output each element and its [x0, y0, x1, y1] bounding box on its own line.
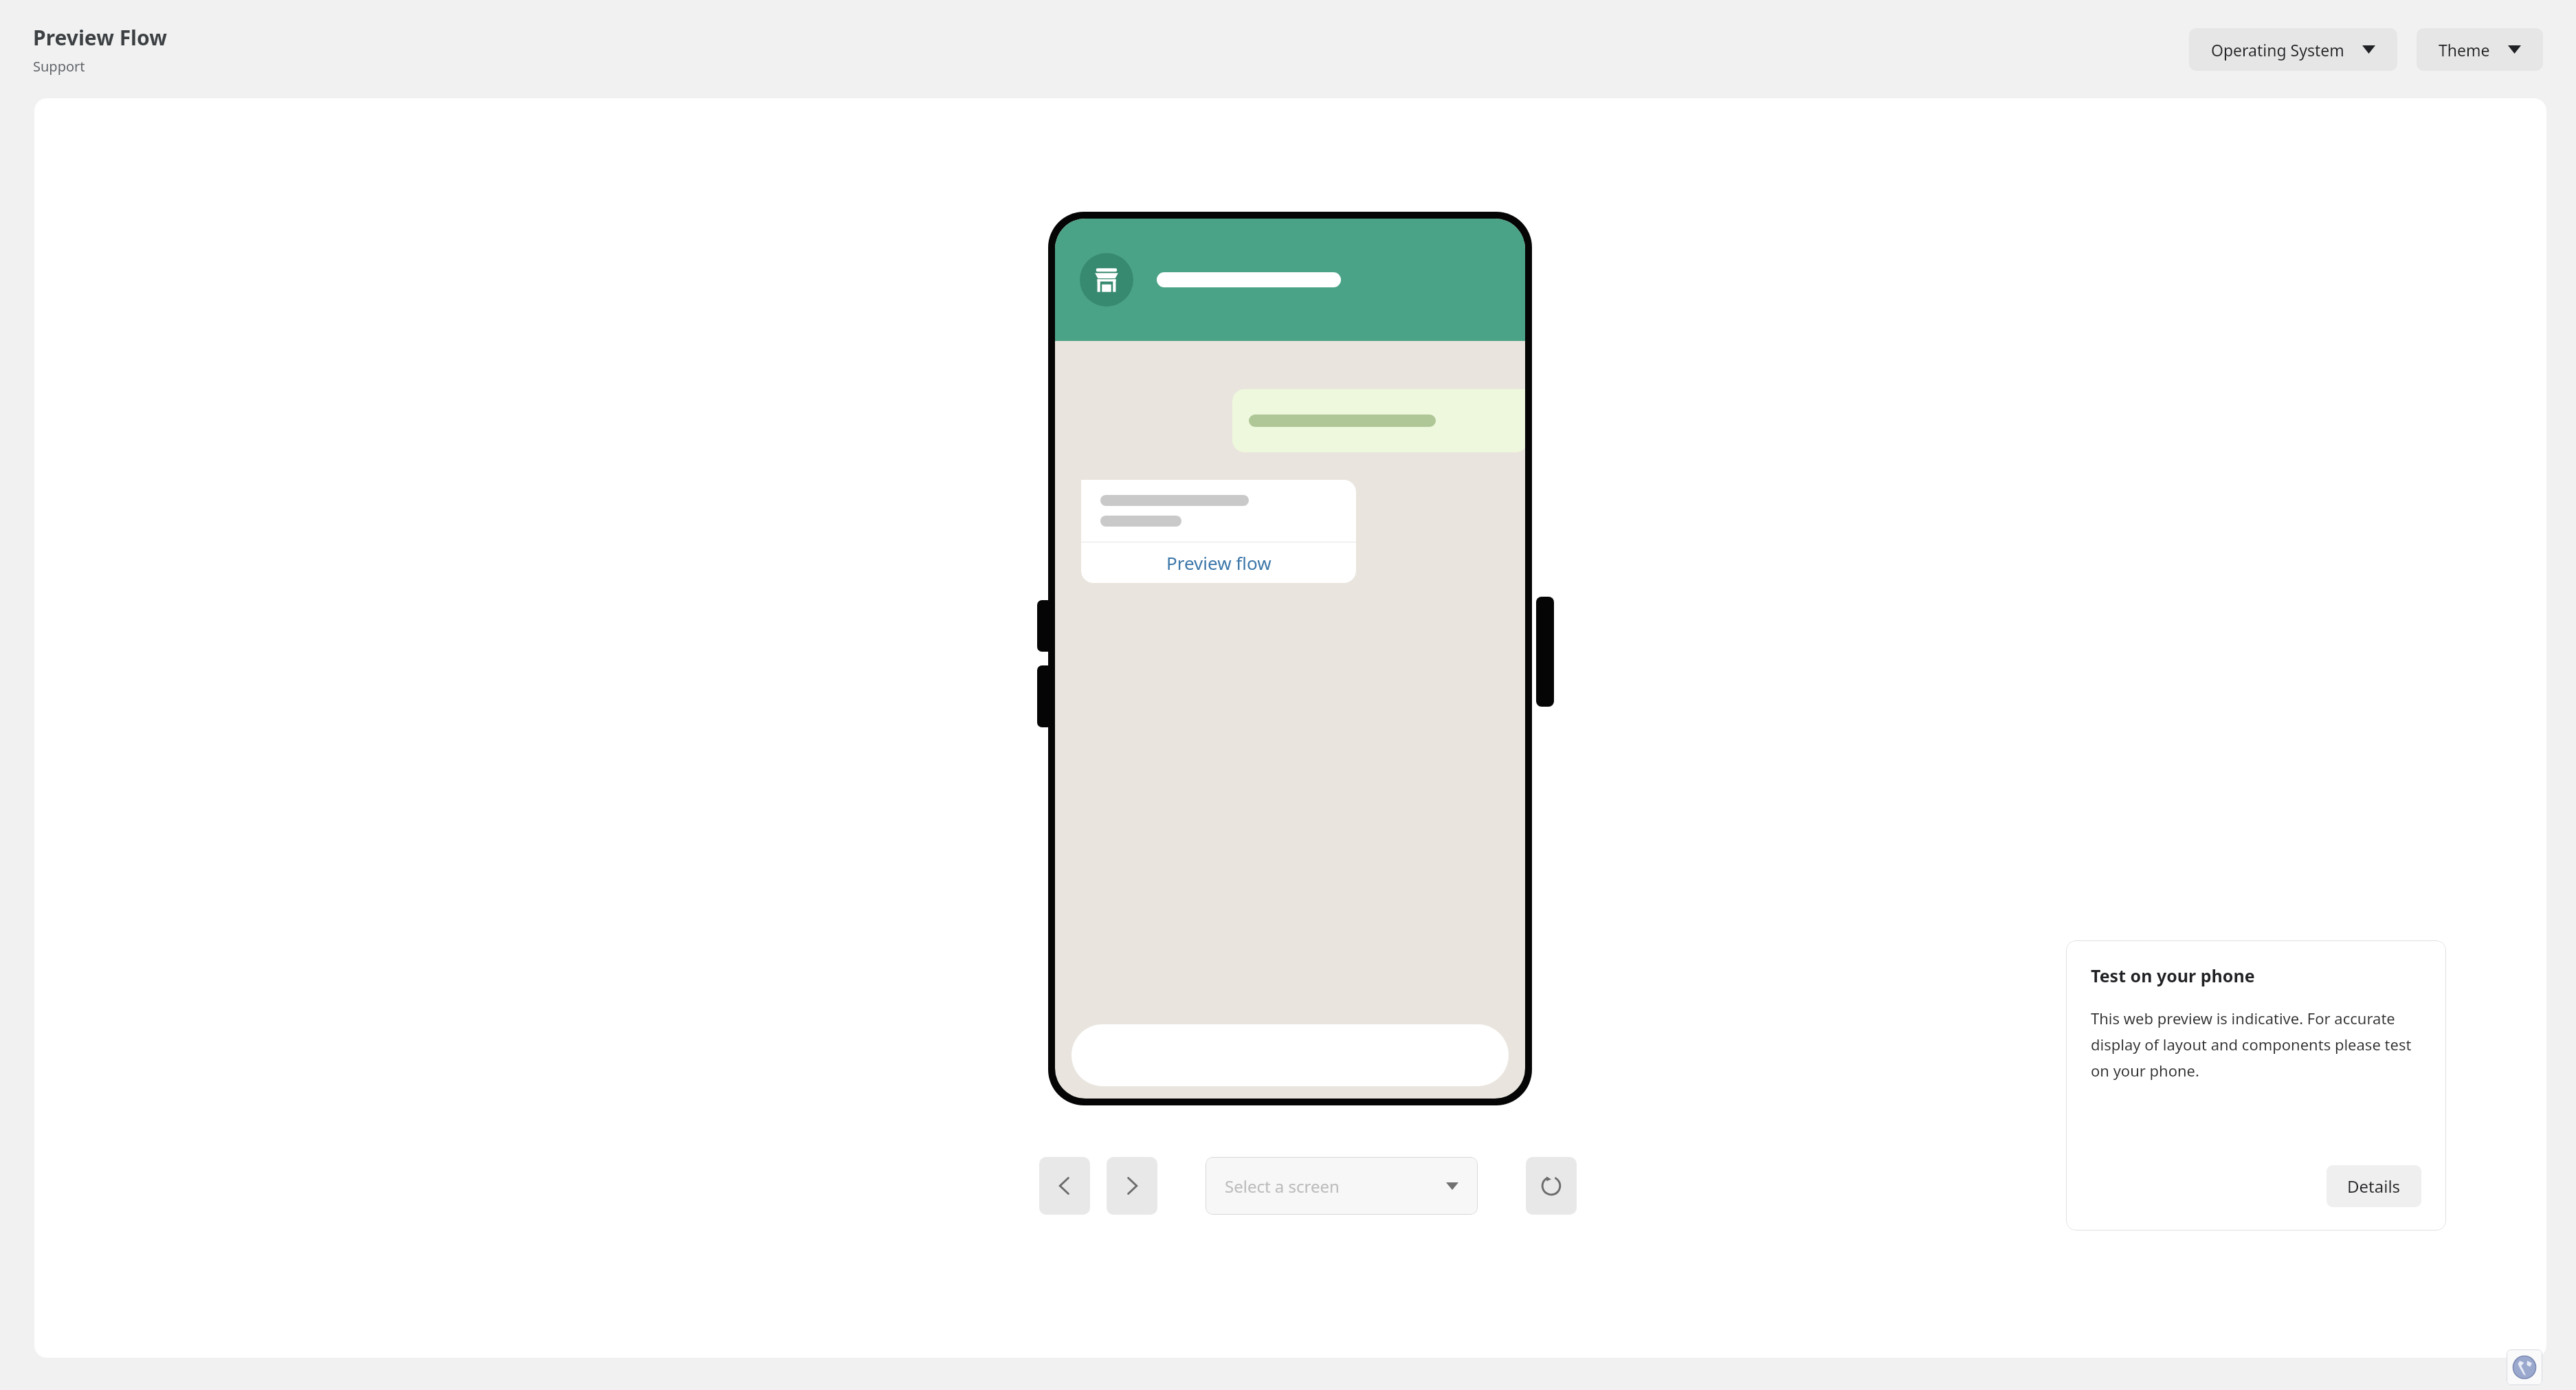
button[interactable]: Store profile: [1080, 253, 1133, 307]
button[interactable]: Details: [2327, 1165, 2421, 1207]
button[interactable]: Reload: [1526, 1157, 1577, 1215]
staticText: Test on your phone: [2091, 964, 2255, 987]
button[interactable]: Theme: [2417, 28, 2543, 71]
staticText: This web preview is indicative. For accu…: [2091, 1008, 2421, 1081]
staticText: Details: [2347, 1175, 2401, 1198]
staticText: Preview Flow: [33, 23, 167, 52]
button[interactable]: [1072, 1024, 1509, 1086]
staticText: Operating System: [2211, 39, 2344, 60]
staticText: Preview flow: [1166, 551, 1272, 575]
button[interactable]: Select a screen: [1206, 1157, 1478, 1215]
button[interactable]: Next screen: [1107, 1157, 1157, 1215]
button[interactable]: Operating System: [2189, 28, 2397, 71]
button[interactable]: Previous screen: [1039, 1157, 1090, 1215]
staticText: Theme: [2439, 39, 2490, 60]
button[interactable]: Language: [2507, 1349, 2542, 1385]
staticText: Select a screen: [1225, 1175, 1340, 1198]
staticText: Support: [33, 57, 85, 76]
button[interactable]: Preview flow: [1081, 480, 1356, 583]
